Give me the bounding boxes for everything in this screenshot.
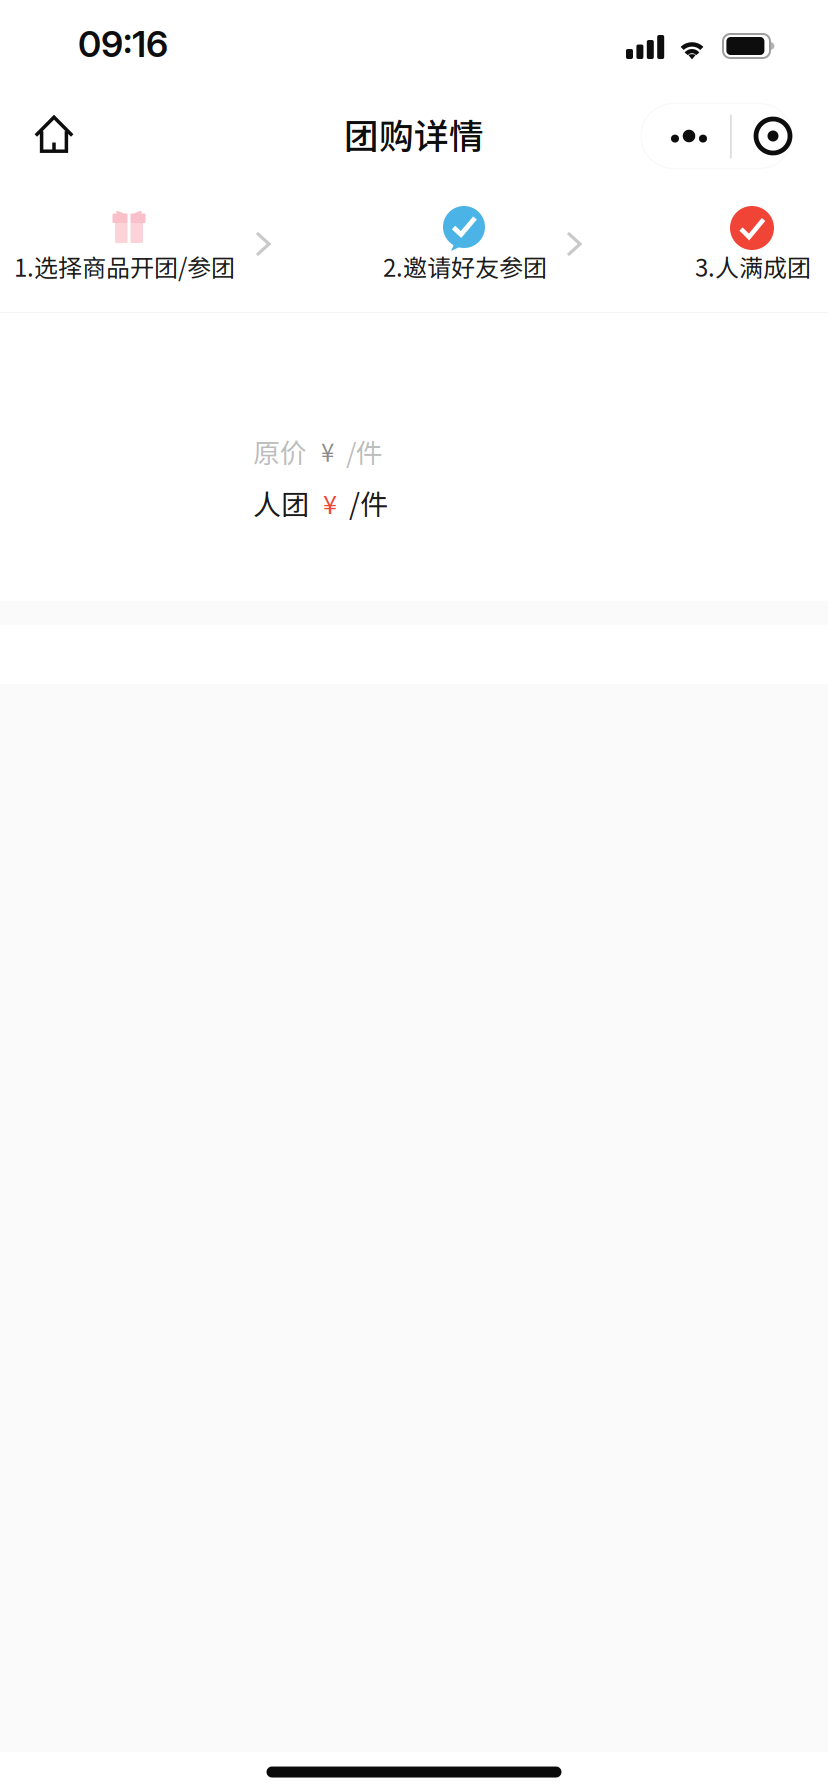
button[interactable]: More <box>641 103 737 168</box>
button[interactable]: 1.选择商品开团/参团 <box>0 179 250 289</box>
staticText: /件 <box>349 483 388 523</box>
staticText: ¥ <box>321 434 334 469</box>
staticText: /件 <box>346 432 383 471</box>
staticText: 人团 <box>253 483 309 523</box>
staticText: 3.人满成团 <box>695 249 811 284</box>
button[interactable]: 2.邀请好友参团 <box>383 179 613 289</box>
staticText: 2.邀请好友参团 <box>383 249 547 284</box>
staticText: 1.选择商品开团/参团 <box>14 249 235 284</box>
button[interactable]: 3.人满成团 <box>694 179 827 289</box>
staticText: 09:16 <box>78 22 168 66</box>
staticText: 团购详情 <box>344 109 484 159</box>
button[interactable]: Close <box>742 103 804 168</box>
staticText: 原价 <box>253 432 307 471</box>
button[interactable]: Home <box>0 93 92 179</box>
staticText: ¥ <box>323 484 337 521</box>
